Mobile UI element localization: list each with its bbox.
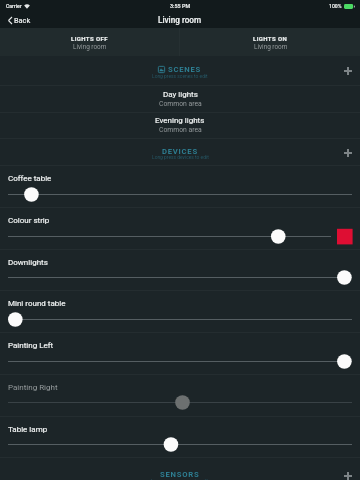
- staticText: Day lights: [163, 90, 198, 99]
- button[interactable]: Pick colour: [337, 228, 353, 244]
- staticText: DEVICES: [162, 147, 198, 156]
- button[interactable]: LIGHTS OFF: [0, 28, 179, 56]
- button[interactable]: Downlights: [0, 249, 360, 291]
- staticText: LIGHTS OFF: [71, 35, 108, 42]
- staticText: Long press devices to edit: [152, 154, 209, 160]
- button[interactable]: Evening lights: [0, 112, 360, 138]
- staticText: Painting Right: [8, 383, 58, 392]
- button[interactable]: Table lamp: [0, 416, 360, 458]
- button[interactable]: LIGHTS ON: [180, 28, 360, 56]
- staticText: Carrier: [6, 3, 22, 9]
- button[interactable]: Back: [8, 16, 31, 25]
- staticText: Living room: [254, 43, 288, 51]
- staticText: Downlights: [8, 258, 48, 267]
- staticText: Painting Left: [8, 341, 54, 350]
- staticText: Long press sensors to edit: [151, 478, 209, 480]
- staticText: SCENES: [168, 65, 202, 74]
- staticText: Table lamp: [8, 425, 48, 434]
- button[interactable]: Colour strip: [0, 207, 360, 249]
- button[interactable]: Coffee table: [0, 165, 360, 207]
- button[interactable]: Add DEVICES: [337, 140, 359, 162]
- staticText: Colour strip: [8, 216, 50, 225]
- staticText: LIGHTS ON: [253, 35, 288, 42]
- staticText: Living room: [73, 43, 107, 51]
- button[interactable]: Add SCENES: [337, 58, 359, 80]
- staticText: Mini round table: [8, 299, 66, 308]
- staticText: Living room: [158, 15, 202, 25]
- staticText: SENSORS: [160, 470, 200, 479]
- button[interactable]: Add SENSORS: [337, 463, 359, 480]
- button[interactable]: Day lights: [0, 85, 360, 112]
- staticText: 100%: [329, 3, 342, 9]
- button[interactable]: Painting Left: [0, 332, 360, 374]
- staticText: Evening lights: [155, 116, 205, 125]
- staticText: Common area: [159, 100, 202, 108]
- staticText: Back: [14, 16, 31, 25]
- button[interactable]: Mini round table: [0, 290, 360, 332]
- staticText: Common area: [159, 126, 202, 134]
- staticText: Long press scenes to edit: [152, 73, 208, 79]
- staticText: 3:55 PM: [170, 3, 191, 9]
- staticText: Coffee table: [8, 174, 52, 183]
- button[interactable]: Painting Right: [0, 374, 360, 416]
